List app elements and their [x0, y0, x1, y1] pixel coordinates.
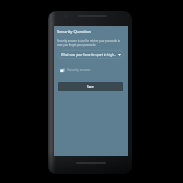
other: Security answer key: [60, 68, 65, 73]
staticText: Save: [87, 85, 94, 89]
staticText: Security answer: [67, 68, 91, 72]
button[interactable]: What was your favorite sport in high..: [57, 50, 124, 59]
button[interactable]: Save: [58, 82, 123, 91]
staticText: Security answer is use for retrive your …: [57, 39, 121, 47]
staticText: Security Question: [57, 29, 91, 35]
button[interactable]: Security answer key: [57, 67, 124, 72]
staticText: What was your favorite sport in high..: [61, 53, 118, 57]
